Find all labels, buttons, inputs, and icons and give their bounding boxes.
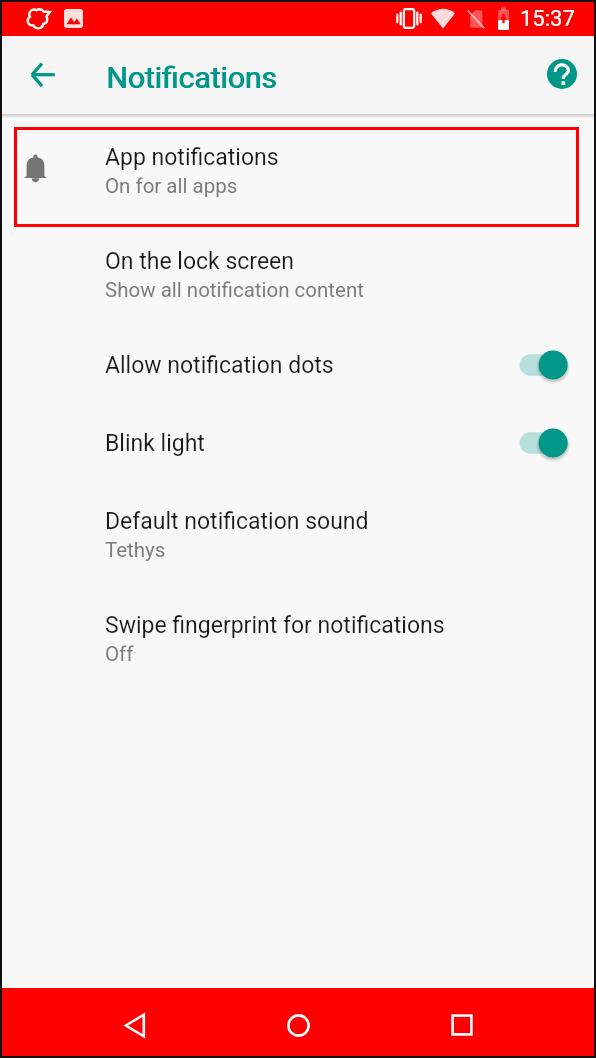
staticText: 15:37 bbox=[520, 6, 575, 32]
staticText: Allow notification dots bbox=[105, 352, 334, 379]
button[interactable]: Blink light bbox=[511, 415, 583, 471]
staticText: Default notification sound bbox=[105, 508, 369, 535]
button[interactable]: Help bbox=[538, 50, 586, 98]
staticText: Tethys bbox=[105, 538, 166, 562]
button[interactable]: On the lock screen bbox=[2, 229, 594, 333]
staticText: On the lock screen bbox=[105, 248, 295, 275]
button[interactable]: Swipe fingerprint for notifications bbox=[2, 593, 594, 697]
staticText: Show all notification content bbox=[105, 278, 364, 302]
button[interactable]: App notifications bbox=[2, 125, 594, 229]
button[interactable]: Allow notification dots bbox=[511, 337, 583, 393]
button[interactable]: Back bbox=[107, 997, 163, 1053]
staticText: Swipe fingerprint for notifications bbox=[105, 612, 445, 639]
button[interactable]: Back bbox=[19, 51, 67, 99]
button[interactable]: Blink light bbox=[2, 411, 594, 489]
staticText: Off bbox=[105, 642, 134, 666]
staticText: Blink light bbox=[105, 430, 205, 457]
staticText: Notifications bbox=[107, 60, 278, 95]
staticText: App notifications bbox=[105, 144, 279, 171]
button[interactable]: Home bbox=[270, 997, 326, 1053]
button[interactable]: Default notification sound bbox=[2, 489, 594, 593]
staticText: Notifications bbox=[106, 60, 277, 95]
button[interactable]: Allow notification dots bbox=[2, 333, 594, 411]
button[interactable]: Recent apps bbox=[434, 997, 490, 1053]
staticText: On for all apps bbox=[105, 174, 238, 198]
